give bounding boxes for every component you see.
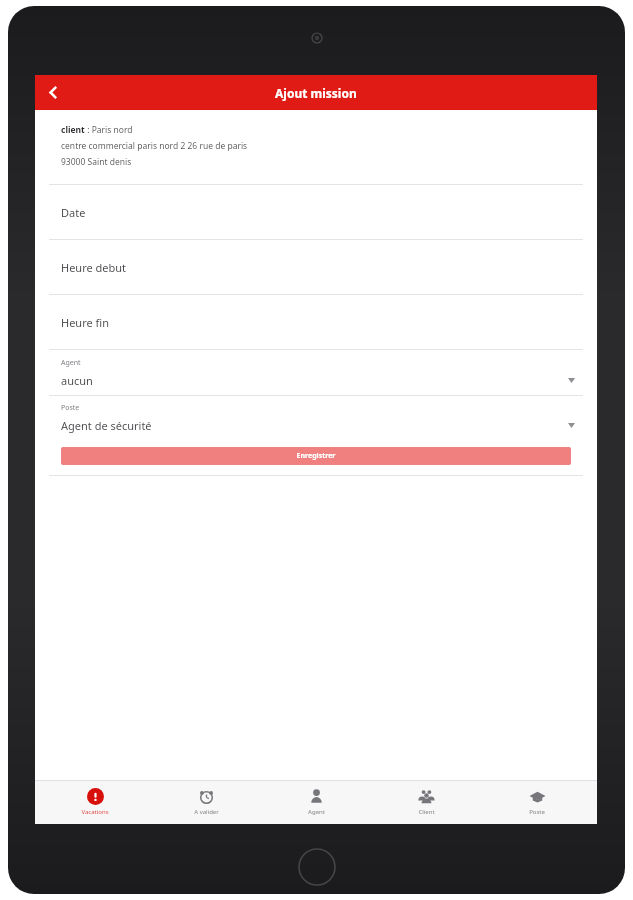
staticText: Agent [308, 808, 325, 816]
button[interactable]: Client [376, 780, 476, 824]
staticText: Ajout mission [275, 85, 357, 101]
staticText: A valider [194, 808, 219, 816]
button[interactable]: Back [35, 75, 71, 110]
staticText: client [61, 124, 85, 136]
button[interactable]: Agent [266, 780, 366, 824]
button[interactable]: Heure debut [35, 240, 597, 294]
staticText: Poste [61, 403, 80, 413]
staticText: Heure fin [61, 315, 109, 330]
staticText: Date [61, 205, 86, 220]
button[interactable]: Date [35, 185, 597, 239]
button[interactable]: Heure fin [35, 295, 597, 349]
button[interactable]: Poste [487, 780, 587, 824]
staticText: Vacations [81, 808, 109, 816]
button[interactable]: Enregistrer [61, 447, 571, 465]
button[interactable]: Agent [35, 354, 597, 395]
button[interactable]: Poste [35, 399, 597, 440]
staticText: : Paris nord [85, 124, 133, 136]
staticText: Heure debut [61, 260, 127, 275]
staticText: Agent de sécurité [61, 418, 568, 433]
staticText: aucun [61, 373, 568, 388]
button[interactable]: A valider [156, 780, 256, 824]
staticText: Agent [61, 358, 81, 368]
staticText: centre commercial paris nord 2 26 rue de… [61, 140, 248, 152]
staticText: Enregistrer [296, 451, 336, 461]
staticText: Client [418, 808, 435, 816]
button[interactable]: Vacations [45, 780, 145, 824]
staticText: Poste [529, 808, 545, 816]
staticText: 93000 Saint denis [61, 156, 132, 168]
